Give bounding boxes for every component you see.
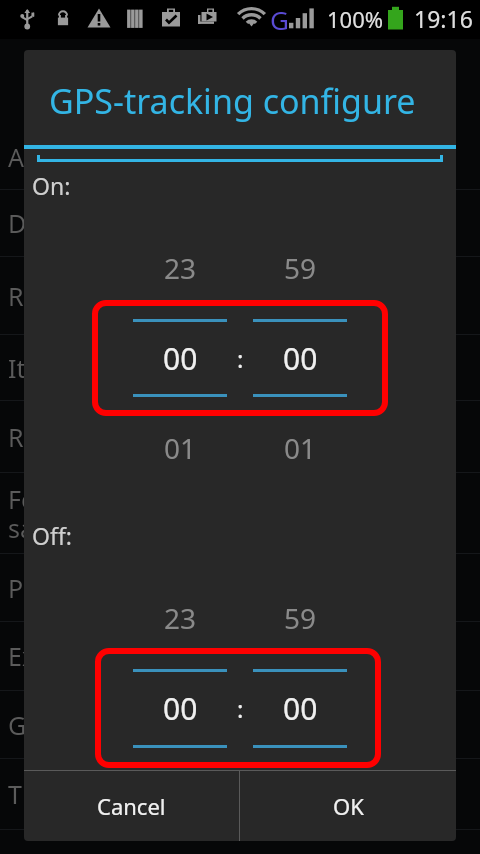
staticText: Theme bbox=[8, 777, 89, 811]
button[interactable]: Export records bbox=[0, 622, 480, 690]
button[interactable]: Auto start bbox=[0, 124, 480, 189]
staticText: 59 bbox=[284, 599, 317, 637]
staticText: 23 bbox=[164, 599, 197, 637]
staticText: 00 bbox=[283, 338, 318, 379]
staticText: 59 bbox=[284, 249, 317, 287]
staticText: Route color bbox=[8, 420, 143, 454]
button[interactable]: Theme bbox=[0, 759, 480, 829]
button[interactable]: Route color bbox=[0, 401, 480, 472]
button[interactable]: GPS-tracking configure bbox=[0, 691, 480, 758]
button[interactable]: Item settings bbox=[0, 335, 480, 400]
staticText: 01 bbox=[164, 429, 197, 467]
button[interactable]: Records list bbox=[0, 257, 480, 334]
staticText: 19:16 bbox=[414, 3, 473, 34]
staticText: 00 bbox=[163, 338, 198, 379]
button[interactable]: OK bbox=[240, 771, 456, 841]
staticText: G bbox=[270, 2, 289, 37]
staticText: 00 bbox=[283, 688, 318, 729]
staticText: Device name bbox=[8, 206, 159, 240]
staticText: 01 bbox=[284, 429, 317, 467]
button[interactable]: Cancel bbox=[24, 771, 239, 841]
staticText: GPS-tracking configure bbox=[8, 708, 278, 742]
staticText: 100% bbox=[327, 4, 384, 34]
button[interactable]: Power saving bbox=[0, 554, 480, 621]
staticText: Cancel bbox=[97, 791, 166, 821]
staticText: Export records bbox=[8, 639, 180, 673]
staticText: OK bbox=[333, 791, 364, 821]
staticText: Off: bbox=[32, 520, 72, 551]
staticText: Found satellites bbox=[8, 482, 112, 545]
staticText: Records list bbox=[8, 279, 143, 313]
staticText: On: bbox=[32, 170, 71, 201]
button[interactable]: Device name bbox=[0, 190, 480, 256]
staticText: Power saving bbox=[8, 571, 165, 605]
staticText: Auto start bbox=[8, 140, 125, 174]
staticText: : bbox=[237, 692, 244, 725]
staticText: Item settings bbox=[8, 351, 163, 385]
button[interactable]: Found satellites bbox=[0, 473, 480, 553]
staticText: 00 bbox=[163, 688, 198, 729]
staticText: : bbox=[237, 342, 244, 375]
staticText: 23 bbox=[164, 249, 197, 287]
staticText: GPS-tracking configure bbox=[49, 78, 416, 124]
